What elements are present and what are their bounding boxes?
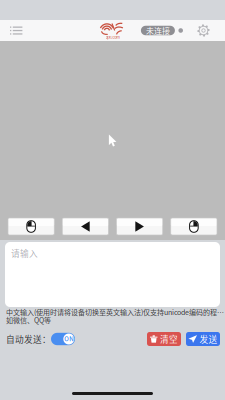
button[interactable]: 发送 <box>186 332 220 346</box>
button[interactable]: Scroll left <box>62 218 108 235</box>
button[interactable]: Left click <box>8 218 54 235</box>
button[interactable]: 未连接 <box>141 26 175 35</box>
staticText: 如微信、QQ等 <box>6 315 51 325</box>
staticText: 中文输入(使用时请将设备切换至英文输入法)仅支持unicode编码的程序, <box>6 307 225 317</box>
staticText: 自动发送： <box>6 333 51 345</box>
staticText: ON <box>64 335 73 343</box>
staticText: djxt.com <box>105 35 119 40</box>
button[interactable]: Auto send <box>51 333 75 345</box>
button[interactable]: Right click <box>171 218 217 235</box>
staticText: 清空 <box>160 333 178 345</box>
button[interactable]: 清空 <box>147 332 181 346</box>
button[interactable]: Settings <box>195 22 212 39</box>
staticText: 未连接 <box>146 25 170 36</box>
staticText: 发送 <box>199 333 217 345</box>
button[interactable]: Menu <box>0 20 31 41</box>
button[interactable]: Scroll right <box>116 218 163 235</box>
staticText: 请输入 <box>11 247 38 259</box>
